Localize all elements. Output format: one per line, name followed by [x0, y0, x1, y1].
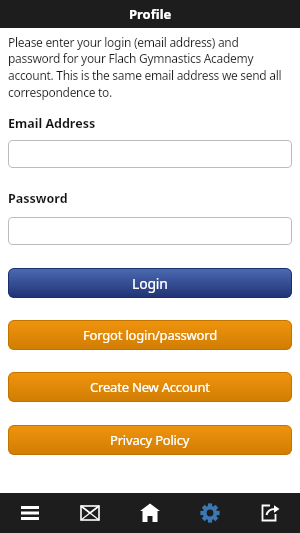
staticText: Profile — [129, 5, 172, 23]
button[interactable] — [0, 493, 60, 533]
button[interactable]: Forgot login/password — [8, 320, 292, 350]
staticText: Create New Account — [90, 378, 210, 396]
staticText: Password — [8, 190, 68, 207]
staticText: Email Address — [8, 115, 96, 132]
staticText: Privacy Policy — [110, 431, 190, 449]
button[interactable] — [8, 217, 292, 245]
staticText: Forgot login/password — [83, 326, 217, 344]
staticText: Login — [132, 274, 168, 293]
button[interactable] — [180, 493, 240, 533]
button[interactable] — [120, 493, 180, 533]
button[interactable] — [60, 493, 120, 533]
button[interactable]: Privacy Policy — [8, 425, 292, 455]
button[interactable] — [8, 140, 292, 168]
staticText: Please enter your login (email address) … — [8, 34, 282, 100]
button[interactable]: Login — [8, 268, 292, 298]
button[interactable]: Create New Account — [8, 372, 292, 402]
button[interactable] — [240, 493, 300, 533]
